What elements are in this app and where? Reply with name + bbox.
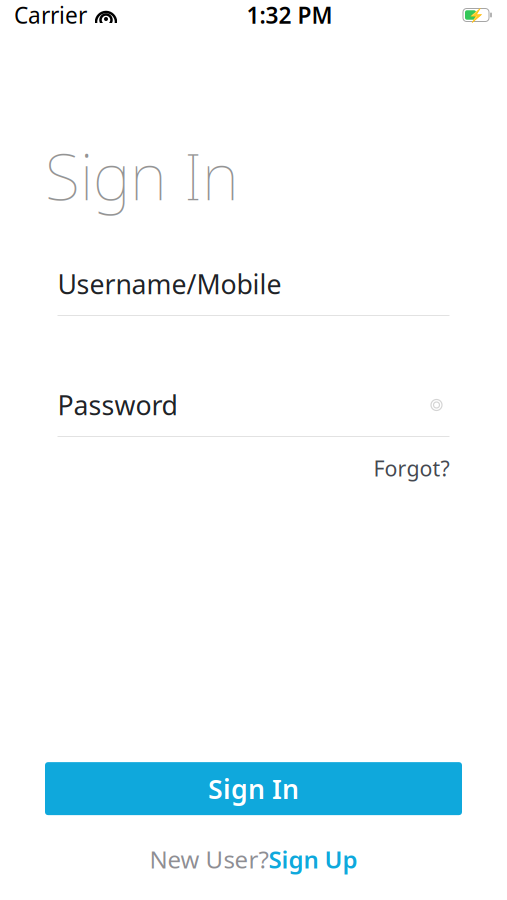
button[interactable]: Show password: [423, 392, 449, 418]
staticText: Sign In: [208, 771, 299, 806]
staticText: Carrier: [14, 0, 87, 30]
button[interactable]: New User?: [149, 843, 357, 875]
staticText: New User?: [149, 843, 268, 875]
staticText: ⚡: [467, 7, 484, 23]
button[interactable]: Forgot?: [373, 454, 449, 482]
staticText: Password: [57, 387, 177, 423]
staticText: Forgot?: [373, 454, 449, 482]
staticText: Username/Mobile: [57, 266, 281, 302]
staticText: Sign Up: [268, 843, 357, 875]
staticText: Sign In: [45, 133, 239, 218]
button[interactable]: Sign In: [45, 762, 462, 815]
staticText: 1:32 PM: [246, 0, 332, 30]
